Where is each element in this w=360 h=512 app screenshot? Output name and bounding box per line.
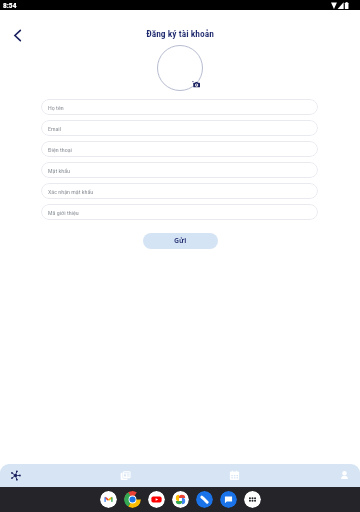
staticText: Họ tên [48, 104, 64, 111]
button[interactable]: Xác nhận mật khẩu [41, 183, 318, 199]
staticText: Điện thoại [48, 146, 72, 153]
button[interactable]: Calendar [223, 464, 246, 487]
button[interactable]: Change photo [157, 45, 203, 91]
button[interactable]: App [196, 491, 213, 508]
staticText: Xác nhận mật khẩu [48, 188, 94, 195]
button[interactable]: Mã giới thiệu [41, 204, 318, 220]
staticText: Mật khẩu [48, 167, 70, 174]
button[interactable]: Home [4, 464, 27, 487]
button[interactable]: Profile [333, 464, 356, 487]
staticText: Email [48, 125, 62, 132]
staticText: Đăng ký tài khoản [146, 28, 214, 39]
button[interactable]: Documents [114, 464, 137, 487]
staticText: Gửi [174, 236, 187, 246]
button[interactable]: App [100, 491, 117, 508]
button[interactable]: App [148, 491, 165, 508]
button[interactable]: Điện thoại [41, 141, 318, 157]
button[interactable]: App [124, 491, 141, 508]
button[interactable]: App [220, 491, 237, 508]
button[interactable]: Mật khẩu [41, 162, 318, 178]
button[interactable]: Gửi [143, 233, 218, 249]
button[interactable]: App [172, 491, 189, 508]
button[interactable]: App [244, 491, 261, 508]
button[interactable]: Email [41, 120, 318, 136]
button[interactable]: Back [5, 23, 29, 47]
staticText: 8:54 [3, 1, 17, 10]
staticText: Mã giới thiệu [48, 209, 79, 216]
button[interactable]: Họ tên [41, 99, 318, 115]
